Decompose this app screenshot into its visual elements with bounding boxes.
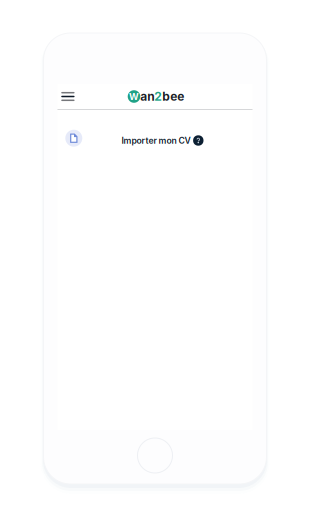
staticText: bee [162, 89, 184, 104]
staticText: 2 [154, 89, 162, 104]
staticText: Importer mon CV [121, 135, 190, 146]
button[interactable]: Importer mon CV [57, 110, 252, 156]
button[interactable]: Menu [61, 85, 85, 108]
staticText: an [140, 89, 154, 104]
staticText: W [129, 91, 139, 102]
